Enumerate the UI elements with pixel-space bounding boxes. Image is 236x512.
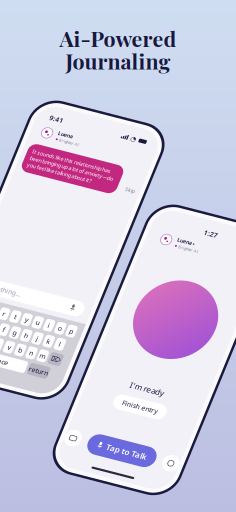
staticText: I'm ready	[48, 182, 83, 193]
staticText: Ai-Powered	[59, 24, 176, 52]
staticText: ⌦	[113, 250, 122, 258]
button[interactable]: More	[107, 246, 124, 263]
staticText: Journaling	[65, 46, 170, 75]
staticText: It sounds like this relationship has bee…	[16, 53, 102, 74]
staticText: return	[96, 265, 116, 274]
staticText: Skip	[117, 66, 127, 73]
